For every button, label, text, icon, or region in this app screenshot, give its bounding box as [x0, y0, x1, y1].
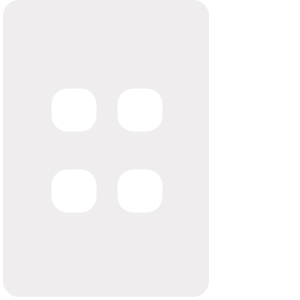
button[interactable]: Top right	[117, 88, 162, 131]
button[interactable]: Top left	[51, 88, 96, 131]
button[interactable]: Bottom right	[117, 169, 162, 212]
button[interactable]: Bottom left	[51, 169, 96, 212]
